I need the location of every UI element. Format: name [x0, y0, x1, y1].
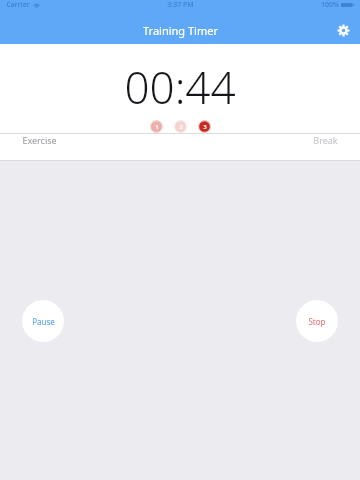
- staticText: 100%: [321, 0, 339, 10]
- staticText: Pause: [32, 316, 55, 327]
- staticText: Break: [313, 134, 338, 146]
- button[interactable]: Settings: [332, 19, 354, 41]
- staticText: Carrier: [6, 0, 30, 10]
- staticText: 00:44: [124, 57, 236, 117]
- button[interactable]: Exercise: [0, 134, 360, 160]
- staticText: 3:37 PM: [167, 0, 194, 10]
- staticText: 2: [179, 123, 183, 131]
- button[interactable]: Pause: [22, 300, 64, 342]
- staticText: Exercise: [22, 134, 57, 146]
- staticText: 1: [155, 123, 159, 131]
- staticText: 3: [203, 123, 207, 131]
- staticText: Training Timer: [143, 23, 218, 38]
- button[interactable]: Stop: [296, 300, 338, 342]
- staticText: Stop: [308, 316, 326, 327]
